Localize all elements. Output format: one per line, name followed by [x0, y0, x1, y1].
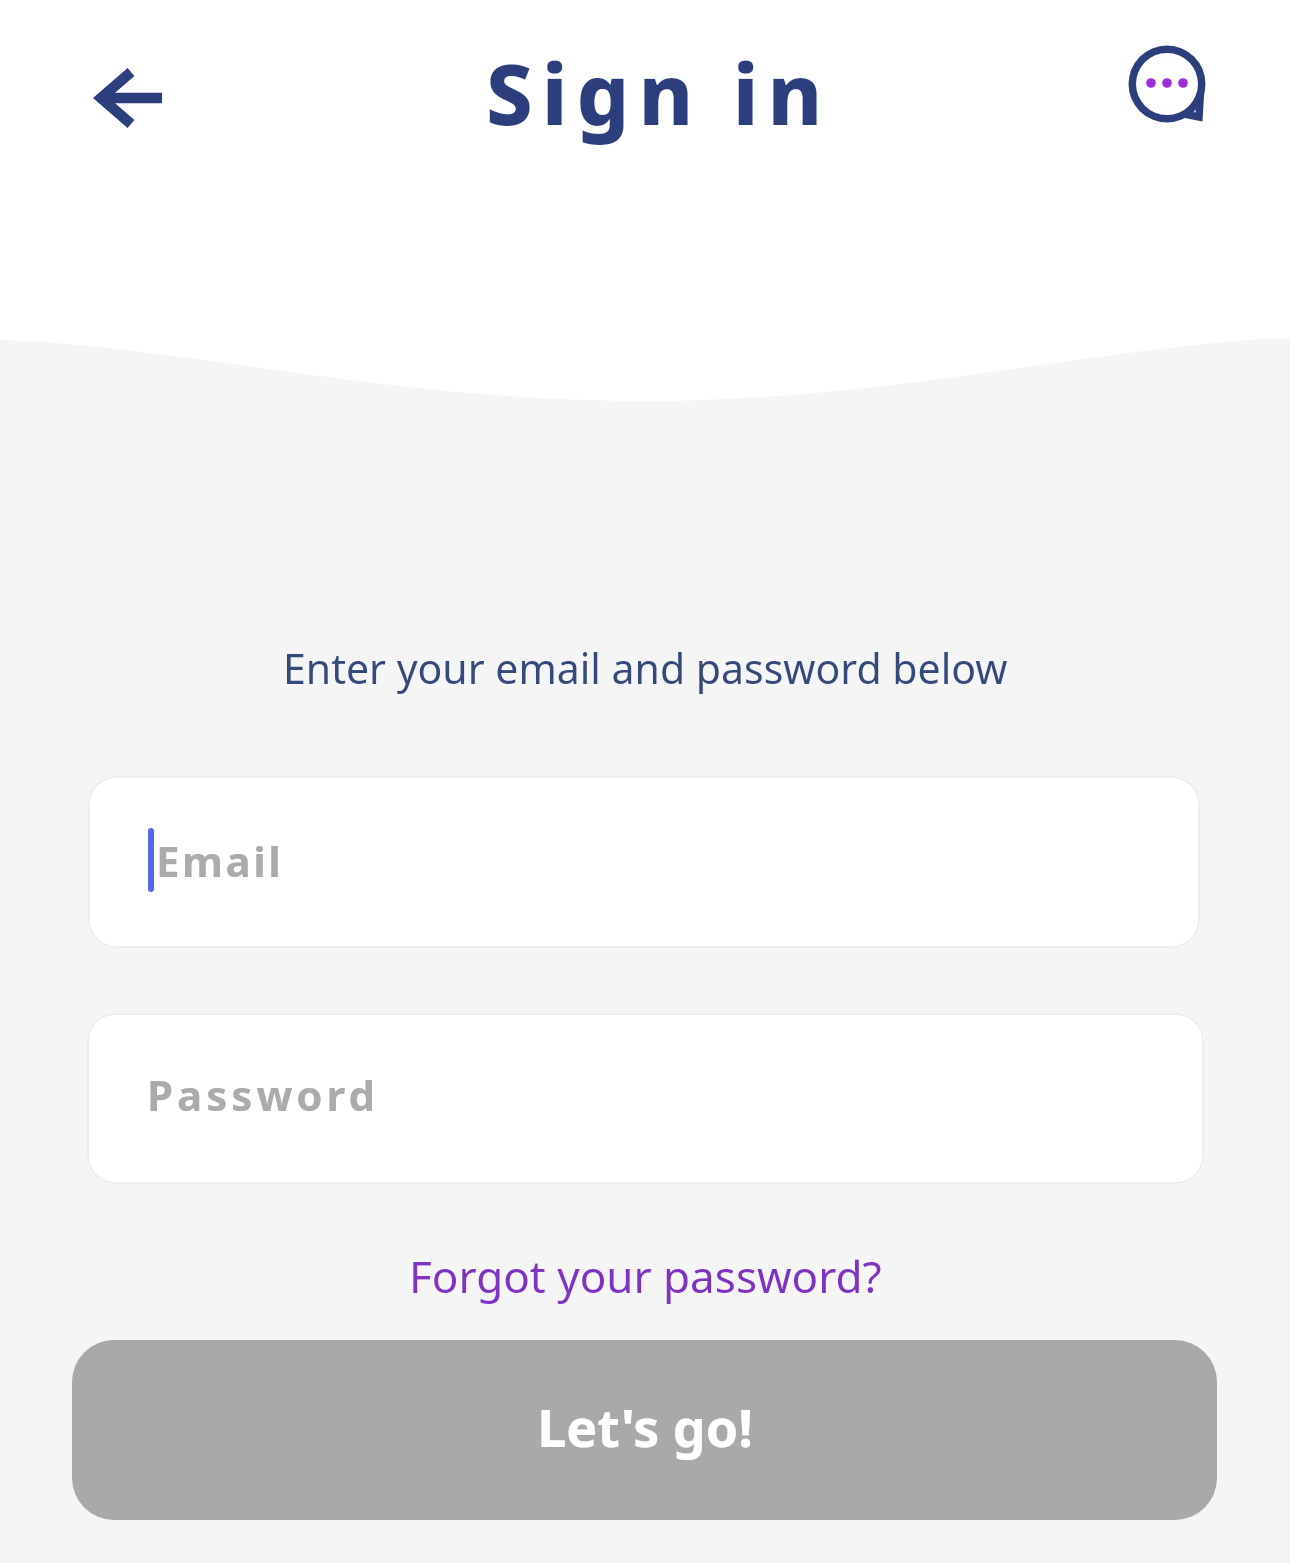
button[interactable]: Forgot your password?: [409, 1246, 882, 1306]
button[interactable]: [1118, 36, 1218, 136]
button[interactable]: Email: [88, 776, 1200, 948]
staticText: Email: [156, 832, 284, 889]
staticText: Enter your email and password below: [283, 640, 1008, 696]
staticText: Password: [147, 1066, 380, 1123]
button[interactable]: [84, 56, 172, 140]
staticText: Let's go!: [537, 1391, 753, 1462]
button[interactable]: Let's go!: [72, 1340, 1217, 1520]
staticText: Forgot your password?: [409, 1246, 882, 1306]
button[interactable]: Password: [87, 1013, 1204, 1184]
staticText: Sign in: [486, 36, 832, 149]
